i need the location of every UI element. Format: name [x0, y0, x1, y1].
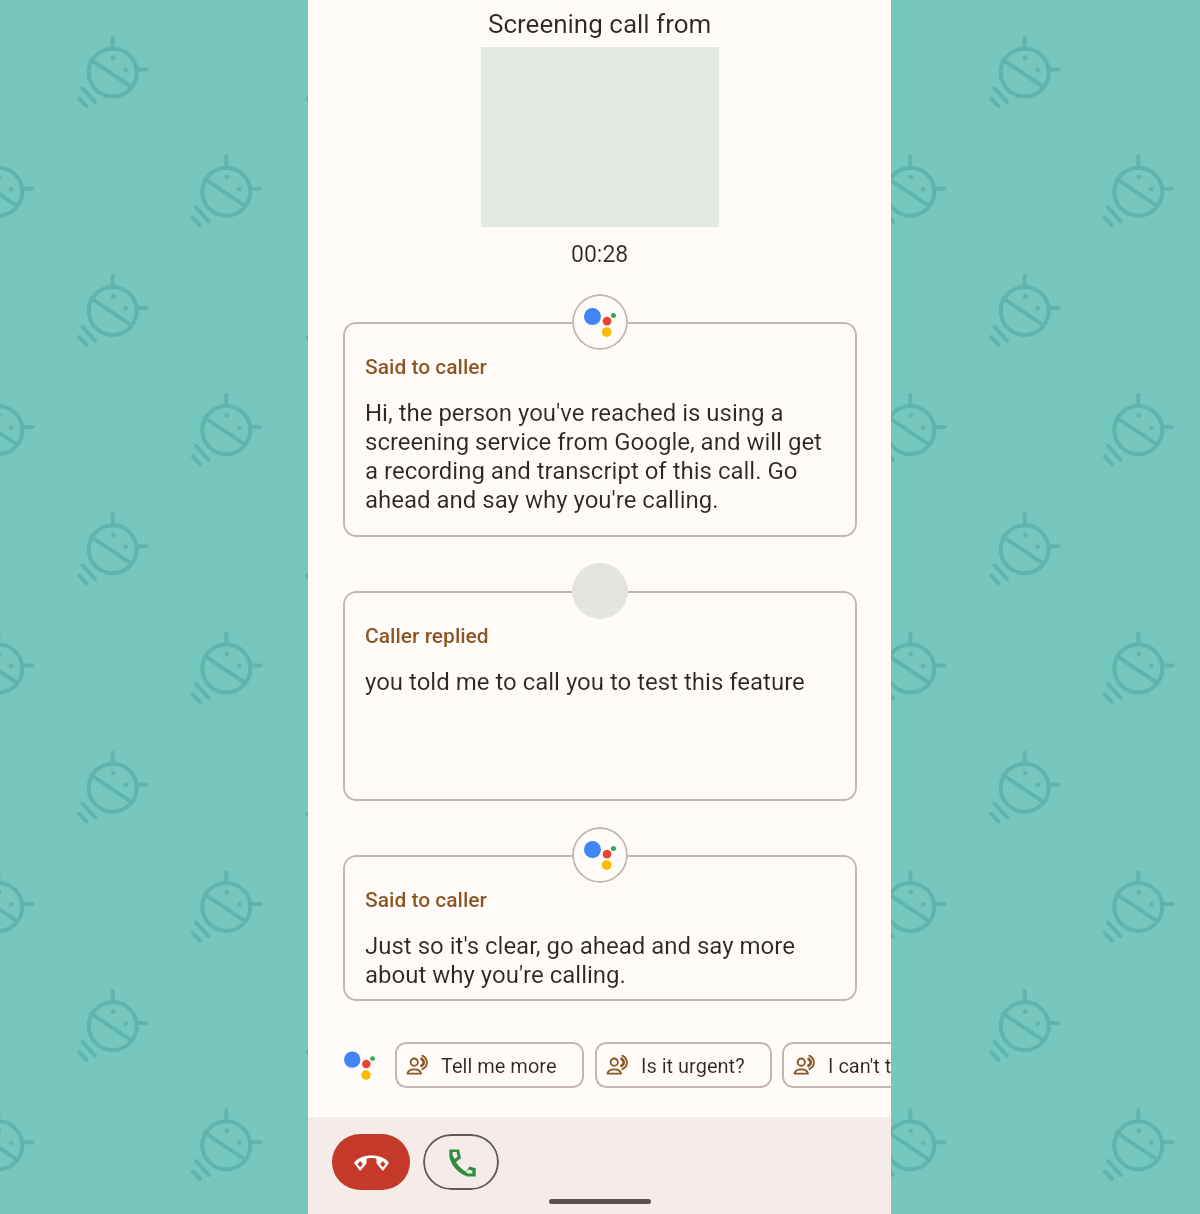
staticText: Tell me more: [441, 1054, 557, 1077]
staticText: Said to caller: [365, 355, 487, 380]
staticText: you told me to call you to test this fea…: [365, 667, 805, 696]
button[interactable]: Decline call: [332, 1134, 410, 1190]
staticText: I can't talk: [828, 1054, 891, 1077]
button[interactable]: Is it urgent?: [595, 1042, 772, 1088]
staticText: Hi, the person you've reached is using a…: [365, 398, 822, 514]
staticText: Is it urgent?: [641, 1054, 745, 1077]
staticText: Just so it's clear, go ahead and say mor…: [365, 931, 795, 989]
button[interactable]: I can't talk: [782, 1042, 891, 1088]
button[interactable]: Said to caller: [343, 855, 857, 1001]
staticText: Caller replied: [365, 624, 489, 649]
staticText: Screening call from: [488, 9, 712, 39]
button[interactable]: Said to caller: [343, 322, 857, 537]
button[interactable]: Tell me more: [395, 1042, 584, 1088]
staticText: 00:28: [571, 241, 629, 268]
button[interactable]: Answer call: [423, 1134, 499, 1190]
button[interactable]: Caller replied: [343, 591, 857, 801]
staticText: Said to caller: [365, 888, 487, 913]
